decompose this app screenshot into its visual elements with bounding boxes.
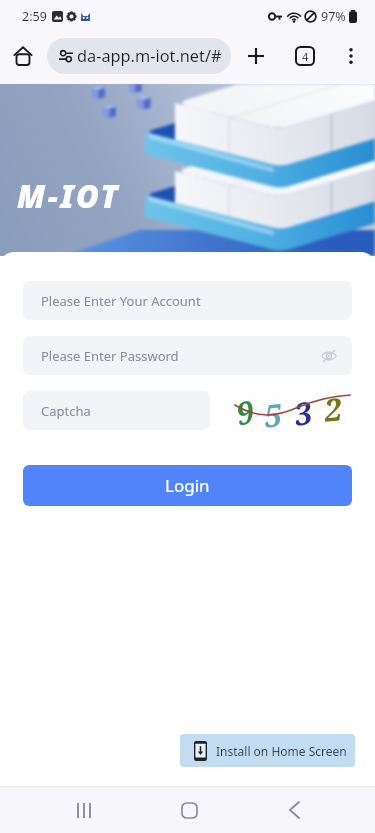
button[interactable]: Back [272, 788, 316, 832]
staticText: 2 [322, 387, 344, 430]
button[interactable]: Please Enter Password [23, 336, 352, 375]
staticText: 97% [321, 8, 346, 25]
button[interactable]: Tabs [289, 40, 321, 72]
button[interactable]: Refresh captcha [232, 390, 352, 431]
staticText: Captcha [41, 402, 91, 420]
button[interactable]: Login [23, 465, 352, 506]
staticText: Please Enter Your Account [41, 292, 201, 310]
staticText: 9 [232, 389, 258, 433]
button[interactable]: New tab [240, 40, 272, 72]
button[interactable]: Home [7, 40, 39, 72]
button[interactable]: Install on Home Screen [180, 734, 355, 767]
staticText: Login [165, 474, 210, 497]
staticText: 5 [262, 393, 284, 436]
button[interactable]: Captcha [23, 391, 210, 430]
staticText: 3 [291, 391, 315, 434]
staticText: M-IOT [17, 175, 121, 217]
button[interactable]: Show password [318, 345, 340, 367]
staticText: Please Enter Password [41, 347, 179, 365]
button[interactable]: Recent apps [62, 788, 106, 832]
staticText: 4 [302, 49, 309, 64]
staticText: Install on Home Screen [216, 743, 347, 759]
staticText: 2:59 [22, 8, 47, 25]
staticText: da-app.m-iot.net/# [77, 45, 222, 67]
button[interactable]: da-app.m-iot.net/# [47, 38, 231, 74]
button[interactable]: Please Enter Your Account [23, 281, 352, 320]
button[interactable]: Home [167, 788, 211, 832]
button[interactable]: More options [335, 40, 367, 72]
